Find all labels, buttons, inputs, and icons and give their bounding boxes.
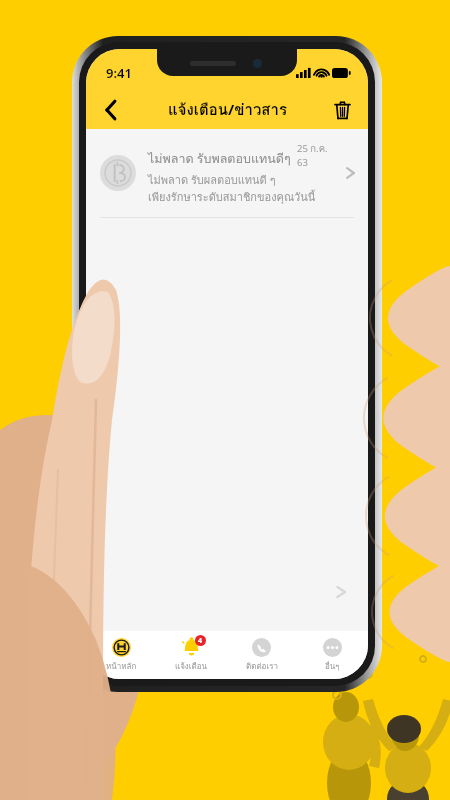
button[interactable]: หน้าหลัก bbox=[86, 631, 156, 679]
staticText: 9:41 bbox=[106, 64, 132, 82]
staticText: 4 bbox=[198, 636, 203, 646]
staticText: อื่นๆ bbox=[325, 660, 340, 673]
button[interactable]: Delete bbox=[324, 92, 360, 128]
button[interactable]: 4 bbox=[156, 631, 226, 679]
button[interactable]: Back bbox=[92, 91, 130, 129]
button[interactable]: ติดต่อเรา bbox=[226, 631, 297, 679]
staticText: หน้าหลัก bbox=[106, 660, 137, 673]
button[interactable]: อื่นๆ bbox=[297, 631, 368, 679]
staticText: 25 ก.ค. 63 bbox=[297, 141, 338, 169]
staticText: ไม่พลาด รับพลตอบแทนดีๆ bbox=[148, 149, 291, 169]
staticText: ติดต่อเรา bbox=[246, 660, 278, 673]
button[interactable]: ไม่พลาด รับพลตอบแทนดีๆ bbox=[86, 129, 368, 218]
staticText: ไม่พลาด รับผลตอบแทนดี ๆ bbox=[148, 171, 276, 188]
staticText: แจ้งเตือน/ข่าวสาร bbox=[168, 98, 287, 122]
staticText: แจ้งเตือน bbox=[175, 660, 207, 673]
staticText: เพียงรักษาระดับสมาชิกของคุณวันนี้ bbox=[148, 188, 316, 205]
